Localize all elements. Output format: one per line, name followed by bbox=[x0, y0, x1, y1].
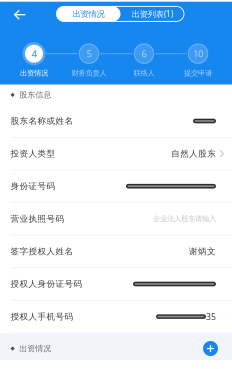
staticText: 身份证号码 bbox=[10, 181, 55, 192]
staticText: 4 bbox=[31, 47, 36, 60]
staticText: 股东信息 bbox=[19, 90, 51, 100]
staticText: 出资情况 bbox=[72, 9, 104, 19]
button[interactable]: 签字授权人姓名 bbox=[0, 235, 232, 268]
staticText: 企业法人股东请输入 bbox=[153, 214, 216, 223]
staticText: 授权人手机号码 bbox=[10, 311, 73, 322]
staticText: 5 bbox=[86, 47, 91, 60]
staticText: 财务负责人 bbox=[71, 68, 106, 78]
button[interactable]: 授权人身份证号码 bbox=[0, 268, 232, 301]
button[interactable]: 出资情况 bbox=[56, 6, 120, 21]
button[interactable]: 出资列表(1) bbox=[120, 6, 184, 21]
button[interactable]: Back bbox=[0, 2, 232, 85]
staticText: 签字授权人姓名 bbox=[10, 246, 73, 257]
button[interactable]: Add bbox=[198, 336, 222, 360]
staticText: 出资情况 bbox=[20, 68, 48, 78]
button[interactable]: 身份证号码 bbox=[0, 170, 232, 203]
staticText: 授权人身份证号码 bbox=[10, 279, 82, 289]
staticText: 谢炳文 bbox=[189, 246, 216, 257]
staticText: 35 bbox=[206, 311, 216, 322]
button[interactable]: 授权人手机号码 bbox=[0, 301, 232, 333]
staticText: 投资人类型 bbox=[10, 148, 55, 159]
staticText: 股东名称或姓名 bbox=[10, 116, 73, 126]
staticText: 10 bbox=[193, 47, 203, 60]
staticText: 提交申请 bbox=[184, 68, 212, 78]
staticText: 营业执照号码 bbox=[10, 213, 64, 224]
staticText: 6 bbox=[141, 47, 146, 60]
staticText: 自然人股东 bbox=[171, 148, 216, 159]
staticText: 出资情况 bbox=[19, 343, 51, 354]
staticText: 联络人 bbox=[133, 68, 154, 78]
staticText: 出资列表(1) bbox=[132, 8, 173, 20]
button[interactable]: 营业执照号码 bbox=[0, 203, 232, 235]
button[interactable]: 股东名称或姓名 bbox=[0, 105, 232, 138]
button[interactable]: 投资人类型 bbox=[0, 138, 232, 170]
